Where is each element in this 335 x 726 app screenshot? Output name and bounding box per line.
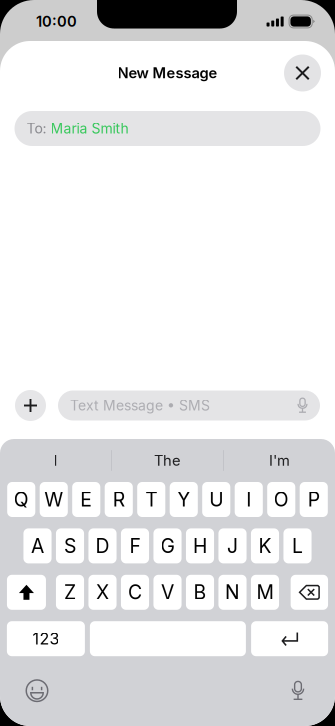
- button[interactable]: I: [235, 482, 263, 517]
- button[interactable]: Delete: [291, 575, 328, 610]
- button[interactable]: C: [121, 575, 149, 610]
- button[interactable]: Y: [170, 482, 198, 517]
- button[interactable]: Close: [284, 54, 321, 91]
- button[interactable]: I: [0, 439, 111, 482]
- staticText: L: [292, 534, 303, 558]
- staticText: H: [193, 534, 207, 558]
- staticText: J: [227, 534, 238, 558]
- staticText: O: [274, 488, 289, 511]
- staticText: V: [161, 581, 174, 604]
- staticText: A: [31, 534, 44, 558]
- button[interactable]: G: [153, 528, 182, 563]
- staticText: D: [95, 534, 109, 558]
- button[interactable]: Q: [7, 482, 35, 517]
- button[interactable]: J: [218, 528, 247, 563]
- staticText: To:: [26, 120, 50, 137]
- button[interactable]: F: [121, 528, 149, 563]
- staticText: W: [44, 488, 63, 511]
- staticText: 123: [32, 629, 59, 648]
- staticText: M: [256, 581, 273, 604]
- staticText: Z: [64, 581, 76, 604]
- staticText: Maria Smith: [50, 120, 128, 137]
- button[interactable]: T: [137, 482, 165, 517]
- staticText: S: [64, 534, 76, 558]
- button[interactable]: Z: [56, 575, 84, 610]
- staticText: T: [145, 488, 157, 511]
- staticText: Text Message • SMS: [70, 397, 210, 414]
- button[interactable]: O: [267, 482, 295, 517]
- button[interactable]: X: [88, 575, 116, 610]
- staticText: Q: [14, 488, 29, 511]
- staticText: K: [258, 534, 271, 558]
- button[interactable]: E: [72, 482, 100, 517]
- staticText: I'm: [269, 452, 290, 469]
- button[interactable]: A: [23, 528, 52, 563]
- button[interactable]: V: [153, 575, 181, 610]
- button[interactable]: R: [105, 482, 133, 517]
- button[interactable]: M: [251, 575, 279, 610]
- staticText: N: [225, 581, 240, 604]
- button[interactable]: Dictate: [276, 669, 320, 713]
- button[interactable]: 123: [7, 621, 85, 656]
- staticText: F: [129, 534, 140, 558]
- staticText: X: [96, 581, 109, 604]
- button[interactable]: U: [202, 482, 230, 517]
- staticText: U: [209, 488, 223, 511]
- staticText: E: [80, 488, 92, 511]
- staticText: I: [53, 452, 57, 469]
- staticText: I: [246, 488, 251, 511]
- staticText: P: [308, 488, 320, 511]
- button[interactable]: L: [283, 528, 312, 563]
- button[interactable]: H: [186, 528, 214, 563]
- button[interactable]: The: [112, 439, 223, 482]
- button[interactable]: Add attachment: [15, 390, 46, 421]
- button[interactable]: B: [186, 575, 214, 610]
- staticText: B: [193, 581, 206, 604]
- button[interactable]: P: [300, 482, 328, 517]
- staticText: C: [128, 581, 142, 604]
- button[interactable]: D: [88, 528, 117, 563]
- button[interactable]: I'm: [224, 439, 335, 482]
- staticText: New Message: [117, 64, 217, 82]
- staticText: G: [160, 534, 174, 558]
- button[interactable]: Emoji keyboard: [15, 669, 59, 713]
- staticText: 10:00: [36, 13, 77, 30]
- staticText: Y: [177, 488, 190, 511]
- button[interactable]: Shift: [7, 575, 46, 610]
- staticText: R: [113, 488, 125, 511]
- button[interactable]: W: [40, 482, 68, 517]
- button[interactable]: K: [251, 528, 279, 563]
- staticText: The: [154, 452, 181, 469]
- button[interactable]: Return: [251, 621, 328, 656]
- button[interactable]: N: [218, 575, 246, 610]
- button[interactable]: S: [56, 528, 84, 563]
